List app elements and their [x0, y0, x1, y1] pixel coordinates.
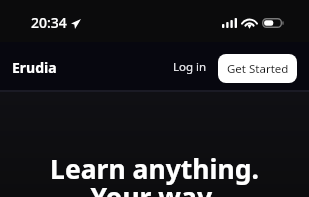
staticText: Erudia: [12, 58, 57, 77]
staticText: Get Started: [227, 61, 289, 77]
staticText: Log in: [173, 59, 207, 75]
button[interactable]: Log in: [166, 52, 214, 82]
staticText: Learn anything. Your way.: [0, 151, 309, 197]
button[interactable]: Erudia: [12, 58, 57, 77]
button[interactable]: Get Started: [218, 54, 297, 83]
staticText: 20:34: [31, 13, 67, 32]
